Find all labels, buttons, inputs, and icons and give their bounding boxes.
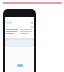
button[interactable]: Primary action <box>17 64 23 67</box>
button[interactable]: Article title <box>0 0 64 9</box>
